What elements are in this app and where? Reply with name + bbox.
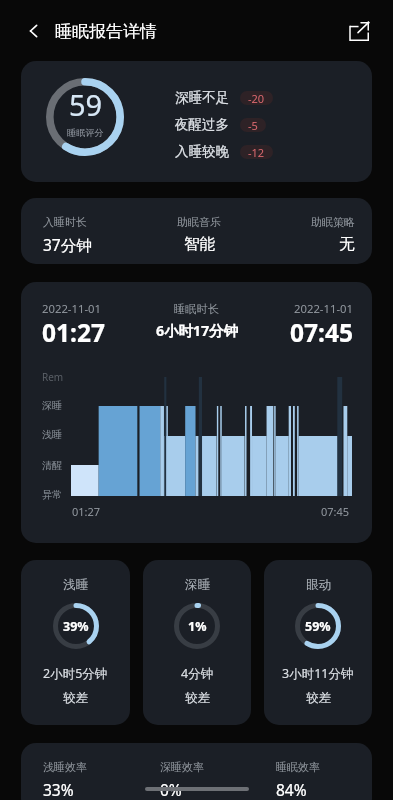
staticText: 59% [305,618,331,635]
staticText: 2小时5分钟 [43,665,108,682]
staticText: 助眠音乐 [177,215,221,229]
staticText: 深睡 [185,577,210,593]
staticText: 眼动 [306,577,331,593]
staticText: 84% [276,779,307,800]
button[interactable]: Share [335,7,383,55]
staticText: 睡眠效率 [276,760,320,774]
staticText: 夜醒过多 [175,116,229,133]
button[interactable]: 眼动 [264,560,372,725]
staticText: 4分钟 [181,665,214,682]
staticText: 2022-11-01 [294,301,353,316]
staticText: 无 [339,234,355,254]
staticText: 入睡时长 [43,215,87,229]
staticText: 33% [43,779,74,800]
staticText: 3小时11分钟 [282,665,354,682]
button[interactable]: 浅睡 [21,560,130,725]
staticText: 2022-11-01 [42,301,101,316]
staticText: 入睡较晚 [175,143,229,160]
staticText: 较差 [185,690,210,706]
button[interactable]: Back [10,7,58,55]
staticText: 深睡 [42,399,62,412]
staticText: 浅睡效率 [43,760,87,774]
button[interactable]: 深睡 [143,560,251,725]
staticText: 清醒 [42,459,62,472]
staticText: 较差 [63,690,88,706]
staticText: 睡眠报告详情 [55,21,157,42]
staticText: 深睡不足 [175,89,229,106]
staticText: 睡眠时长 [174,302,220,316]
staticText: 07:45 [290,316,353,349]
staticText: 浅睡 [63,577,88,593]
staticText: -12 [248,145,265,159]
staticText: -20 [248,91,265,105]
staticText: 39% [63,618,89,635]
staticText: 6小时17分钟 [156,321,238,341]
staticText: 07:45 [321,504,350,519]
staticText: 1% [188,618,207,635]
staticText: 浅睡 [42,428,62,441]
staticText: -5 [248,118,258,132]
staticText: 智能 [184,234,215,254]
staticText: 助眠策略 [311,215,355,229]
staticText: 较差 [306,690,331,706]
staticText: 0% [160,779,182,800]
staticText: 01:27 [72,504,101,519]
staticText: 深睡效率 [160,760,204,774]
staticText: 37分钟 [43,234,92,255]
staticText: 01:27 [42,316,105,349]
staticText: 59 [69,85,103,124]
staticText: 睡眠评分 [67,127,104,139]
staticText: 异常 [42,488,62,501]
staticText: Rem [42,370,64,384]
